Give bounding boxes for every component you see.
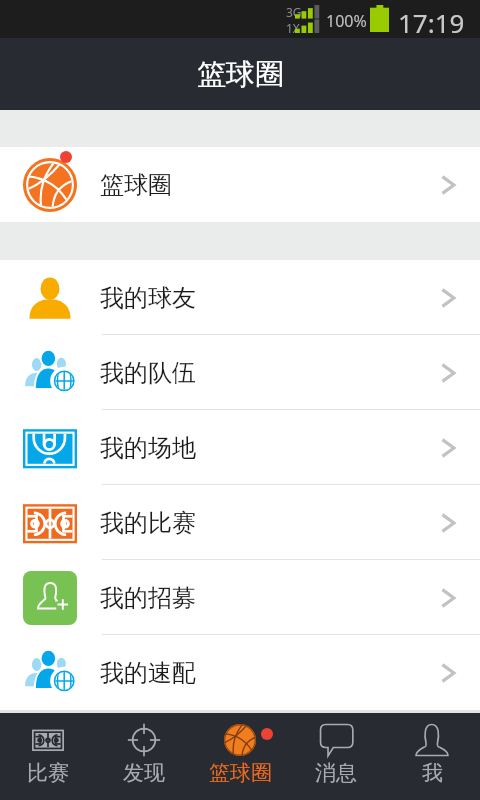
staticText: 我的速配 <box>100 658 196 688</box>
button[interactable]: 比赛 <box>0 713 96 800</box>
button[interactable]: 我的比赛 <box>0 485 480 560</box>
button[interactable]: 我的招募 <box>0 560 480 635</box>
staticText: 我的招募 <box>100 583 196 613</box>
button[interactable]: 我的球友 <box>0 260 480 335</box>
button[interactable]: 我的队伍 <box>0 335 480 410</box>
staticText: 我的比赛 <box>100 508 196 538</box>
button[interactable]: 我的速配 <box>0 635 480 710</box>
button[interactable]: 发现 <box>96 713 192 800</box>
staticText: 发现 <box>123 760 165 786</box>
staticText: 我的场地 <box>100 433 196 463</box>
button[interactable]: 篮球圈 <box>192 713 288 800</box>
button[interactable]: 我的场地 <box>0 410 480 485</box>
button[interactable]: 我 <box>384 713 480 800</box>
staticText: 100% <box>326 10 367 32</box>
staticText: 3G <box>286 4 302 20</box>
staticText: 我的队伍 <box>100 358 196 388</box>
staticText: 篮球圈 <box>197 56 284 93</box>
staticText: 篮球圈 <box>209 760 272 786</box>
button[interactable]: 消息 <box>288 713 384 800</box>
staticText: 1X <box>286 20 300 36</box>
button[interactable]: 篮球圈 <box>0 147 480 222</box>
staticText: 17:19 <box>398 5 465 40</box>
staticText: 消息 <box>315 760 357 786</box>
staticText: 我的球友 <box>100 283 196 313</box>
staticText: 我 <box>422 760 443 786</box>
staticText: 比赛 <box>27 760 69 786</box>
staticText: 篮球圈 <box>100 170 172 200</box>
